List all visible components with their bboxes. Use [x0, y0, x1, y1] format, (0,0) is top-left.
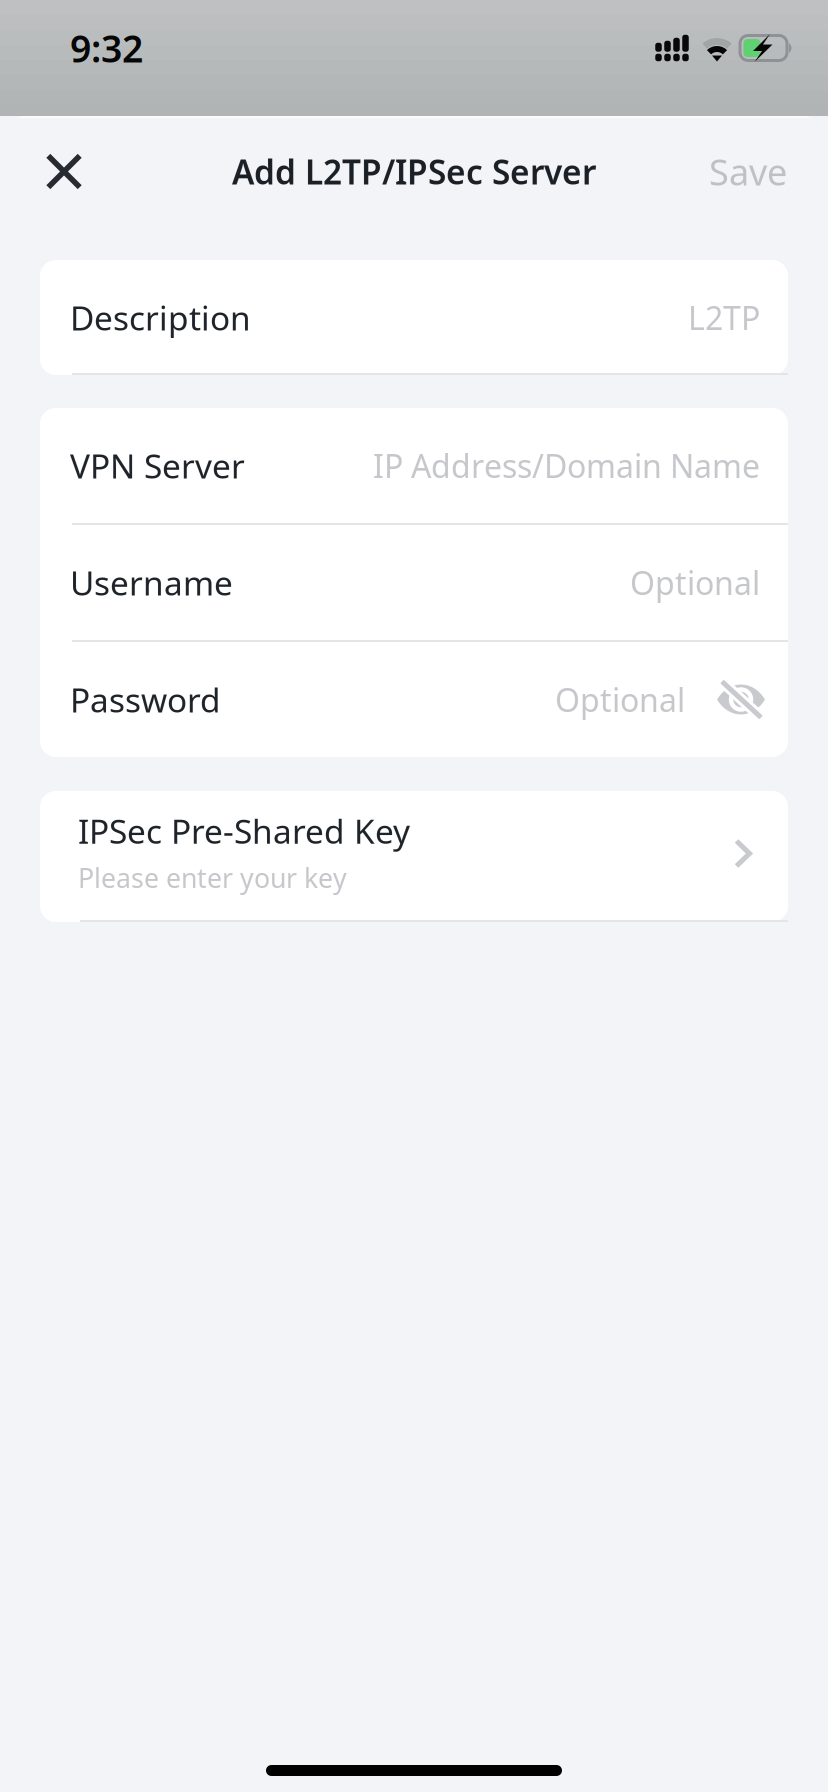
button[interactable]: Save	[709, 118, 828, 225]
staticText: Please enter your key	[78, 860, 347, 895]
button[interactable]: Username	[40, 525, 788, 640]
staticText: IPSec Pre-Shared Key	[78, 809, 410, 853]
staticText: Username	[70, 560, 233, 605]
button[interactable]: Close	[0, 118, 128, 225]
staticText: Add L2TP/IPSec Server	[232, 149, 596, 194]
button[interactable]: VPN Server	[40, 408, 788, 523]
staticText: Optional	[555, 678, 685, 721]
button[interactable]: IPSec Pre-Shared Key	[40, 791, 788, 922]
staticText: Description	[70, 295, 251, 340]
staticText: Password	[70, 677, 221, 722]
staticText: 9:32	[70, 23, 143, 73]
button[interactable]: Description	[40, 260, 788, 375]
button[interactable]: Password	[40, 642, 788, 757]
staticText: IP Address/Domain Name	[373, 444, 760, 487]
staticText: VPN Server	[70, 443, 245, 488]
staticText: Save	[709, 148, 787, 195]
staticText: L2TP	[688, 296, 760, 339]
staticText: Optional	[630, 561, 760, 604]
